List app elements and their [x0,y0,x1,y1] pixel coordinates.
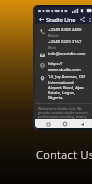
button[interactable]: +2348 0229 3167 [35,38,92,50]
button[interactable]: Back [37,15,45,23]
staticText: Mobile [48,33,59,37]
button[interactable]: Address [35,73,92,101]
button[interactable]: Website [35,60,92,73]
button[interactable]: Recents [44,120,52,128]
button[interactable]: More options [86,16,92,23]
staticText: +2348 0229 3167 [48,39,82,45]
button[interactable]: Back [78,120,86,128]
button[interactable]: Home [61,120,69,128]
button[interactable]: Email [35,50,92,60]
button[interactable]: Contact Us [36,147,92,162]
staticText: Welcome to Studio Line. We provide creat… [38,106,92,119]
staticText: https://www.studio.com [48,61,92,72]
button[interactable]: Call [35,26,92,38]
staticText: Studio Line [46,16,76,23]
staticText: info@acestdio.com [48,51,86,57]
staticText: Work [48,45,57,49]
staticText: +2349 6308 4490 [48,27,82,33]
staticText: 14, Joy Avenue, Off International Airpor… [48,74,92,100]
button[interactable]: Share [78,15,86,23]
